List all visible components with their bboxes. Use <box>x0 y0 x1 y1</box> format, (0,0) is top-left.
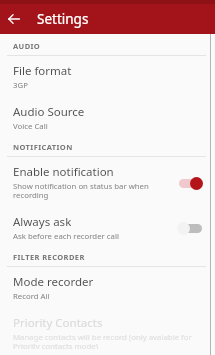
staticText: Voice Call <box>13 121 48 132</box>
staticText: Manage contacts will be record (only ava… <box>13 332 201 349</box>
staticText: Mode recorder <box>13 274 94 290</box>
button[interactable]: File format <box>0 56 215 97</box>
staticText: Priority Contacts <box>13 315 103 331</box>
button[interactable]: Audio Source <box>0 97 215 138</box>
staticText: FILTER RECORDER <box>13 252 85 262</box>
staticText: Record All <box>13 291 50 302</box>
button[interactable]: Enable notification <box>0 157 215 207</box>
staticText: Show notification on status bar when rec… <box>13 181 169 201</box>
button[interactable]: Toggle on <box>177 175 203 191</box>
button[interactable]: Mode recorder <box>0 267 215 308</box>
staticText: Always ask <box>13 214 72 230</box>
staticText: 3GP <box>13 80 28 91</box>
staticText: Enable notification <box>13 164 114 180</box>
staticText: NOTIFICATION <box>13 142 73 152</box>
button[interactable]: Toggle off <box>177 220 203 236</box>
button[interactable]: Navigate up <box>0 5 28 33</box>
staticText: Ask before each recorder call <box>13 231 119 242</box>
button[interactable]: Always ask <box>0 207 215 248</box>
staticText: Audio Source <box>13 104 85 120</box>
staticText: AUDIO <box>13 41 41 51</box>
staticText: Settings <box>37 10 89 28</box>
button[interactable]: Priority Contacts <box>0 308 215 355</box>
staticText: File format <box>13 63 72 79</box>
